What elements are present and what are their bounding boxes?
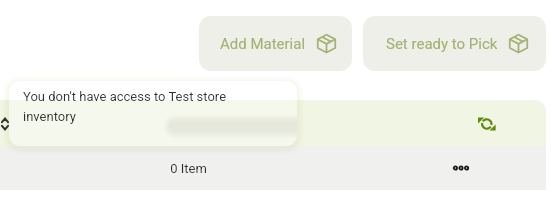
staticText: You don't have access to Test store inve… [23,89,245,124]
staticText: Set ready to Pick [386,35,498,53]
button[interactable]: Add Material [199,16,352,71]
button[interactable]: Refresh [470,106,498,134]
button[interactable]: Sort [0,112,17,136]
button[interactable]: Set ready to Pick [363,16,546,71]
button[interactable]: You don't have access to Test store inve… [9,81,297,146]
staticText: 0 Item [170,161,207,176]
staticText: Add Material [220,35,306,53]
button[interactable]: More options [448,155,474,181]
button[interactable]: 0 Item [152,156,224,180]
